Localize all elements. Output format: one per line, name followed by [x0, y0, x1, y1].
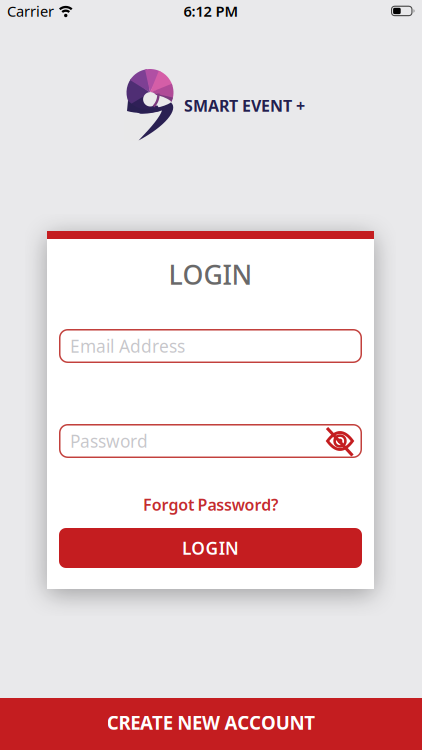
staticText: Forgot Password?	[143, 494, 278, 515]
button[interactable]: CREATE NEW ACCOUNT	[0, 698, 422, 750]
staticText: Email Address	[70, 334, 185, 357]
staticText: Carrier	[7, 1, 54, 21]
staticText: Password	[70, 429, 148, 452]
button[interactable]: LOGIN	[59, 528, 362, 568]
button[interactable]: Forgot Password?	[143, 495, 278, 513]
staticText: LOGIN	[168, 257, 252, 292]
staticText: LOGIN	[182, 536, 239, 559]
staticText: 6:12 PM	[183, 1, 238, 21]
staticText: SMART EVENT +	[184, 95, 305, 116]
button[interactable]: Show password	[325, 428, 355, 454]
staticText: CREATE NEW ACCOUNT	[107, 710, 315, 735]
